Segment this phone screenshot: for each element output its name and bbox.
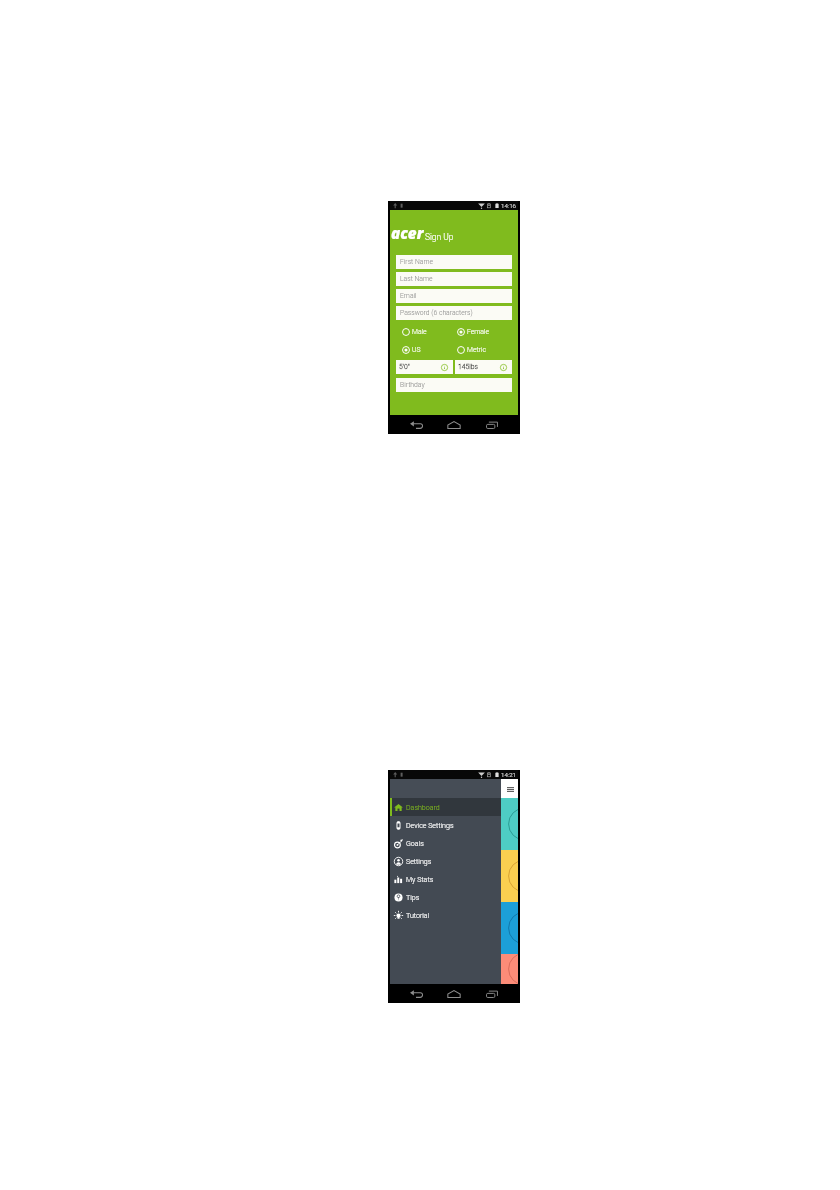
staticText: 14:21 (501, 771, 517, 778)
staticText: Password (6 characters) (400, 309, 473, 317)
button[interactable]: Back (404, 985, 428, 1003)
button[interactable]: First Name (396, 255, 512, 269)
staticText: 5'0" (399, 363, 410, 371)
button[interactable]: Distance card (501, 902, 518, 954)
button[interactable]: Steps card (501, 798, 518, 850)
button[interactable]: Calories card (501, 850, 518, 902)
button[interactable]: Recents (480, 985, 504, 1003)
button[interactable]: Tips (390, 888, 501, 906)
staticText: Last Name (400, 275, 433, 283)
staticText: Metric (467, 346, 486, 354)
button[interactable]: Back (404, 416, 428, 434)
staticText: Sign Up (425, 232, 454, 242)
staticText: 14:16 (501, 202, 517, 209)
staticText: Birthday (400, 381, 425, 389)
staticText: Email (400, 292, 417, 300)
staticText: Device Settings (406, 821, 454, 829)
button[interactable]: Sleep card (501, 954, 518, 984)
staticText: US (412, 346, 421, 354)
button[interactable]: Tutorial (390, 906, 501, 924)
button[interactable]: Device Settings (390, 816, 501, 834)
button[interactable]: Male (402, 323, 457, 341)
button[interactable]: Last Name (396, 272, 512, 286)
staticText: acer (391, 223, 424, 244)
button[interactable]: Goals (390, 834, 501, 852)
staticText: Tutorial (406, 911, 430, 919)
button[interactable]: Metric (457, 341, 512, 359)
button[interactable]: US (402, 341, 457, 359)
staticText: My Stats (406, 875, 434, 883)
button[interactable]: Password (6 characters) (396, 306, 512, 320)
button[interactable]: Dashboard (390, 798, 501, 816)
staticText: Goals (406, 839, 424, 847)
button[interactable]: Home (442, 985, 466, 1003)
button[interactable]: Settings (390, 852, 501, 870)
staticText: Tips (406, 893, 420, 901)
staticText: Male (412, 328, 427, 336)
button[interactable]: Birthday (396, 378, 512, 392)
button[interactable]: Recents (480, 416, 504, 434)
staticText: Settings (406, 857, 432, 865)
button[interactable]: Open navigation menu (504, 783, 516, 795)
button[interactable]: Home (442, 416, 466, 434)
staticText: Female (467, 328, 489, 336)
staticText: 145lbs (458, 363, 479, 371)
button[interactable]: My Stats (390, 870, 501, 888)
staticText: First Name (400, 258, 433, 266)
staticText: Dashboard (406, 803, 440, 811)
button[interactable]: 145lbs (455, 360, 512, 374)
button[interactable]: Email (396, 289, 512, 303)
button[interactable]: Female (457, 323, 512, 341)
button[interactable]: 5'0" (396, 360, 453, 374)
